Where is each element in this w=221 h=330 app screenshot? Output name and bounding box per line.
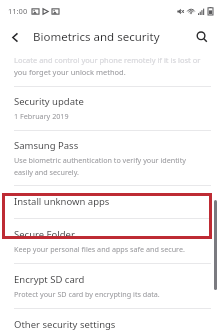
staticText: Encrypt SD card — [14, 273, 85, 286]
button[interactable]: Install unknown apps — [0, 186, 221, 218]
staticText: Install unknown apps — [14, 195, 110, 208]
staticText: Secure Folder — [14, 228, 75, 241]
staticText: you forget your unlock method. — [14, 67, 126, 77]
staticText: Other security settings — [14, 318, 116, 330]
staticText: Keep your personal files and apps safe a… — [14, 244, 185, 254]
button[interactable]: Locate and control your phone remotely i… — [0, 52, 221, 86]
staticText: 1 February 2019 — [14, 111, 69, 121]
button[interactable]: Secure Folder — [0, 219, 221, 263]
staticText: Samsung Pass — [14, 139, 79, 152]
staticText: Locate and control your phone remotely i… — [14, 55, 203, 65]
staticText: 11:00 — [8, 6, 28, 16]
staticText: Security update — [14, 95, 84, 108]
staticText: Biometrics and security — [33, 29, 160, 45]
button[interactable]: Samsung Pass — [0, 131, 221, 185]
button[interactable]: Security update — [0, 87, 221, 130]
staticText: Protect your SD card by encrypting its d… — [14, 289, 160, 299]
button[interactable]: Search — [187, 22, 217, 52]
button[interactable]: Encrypt SD card — [0, 264, 221, 308]
staticText: easily and securely. — [14, 167, 79, 177]
staticText: Use biometric authentication to verify y… — [14, 155, 186, 165]
button[interactable]: Back — [0, 22, 30, 52]
button[interactable]: Other security settings — [0, 309, 221, 330]
